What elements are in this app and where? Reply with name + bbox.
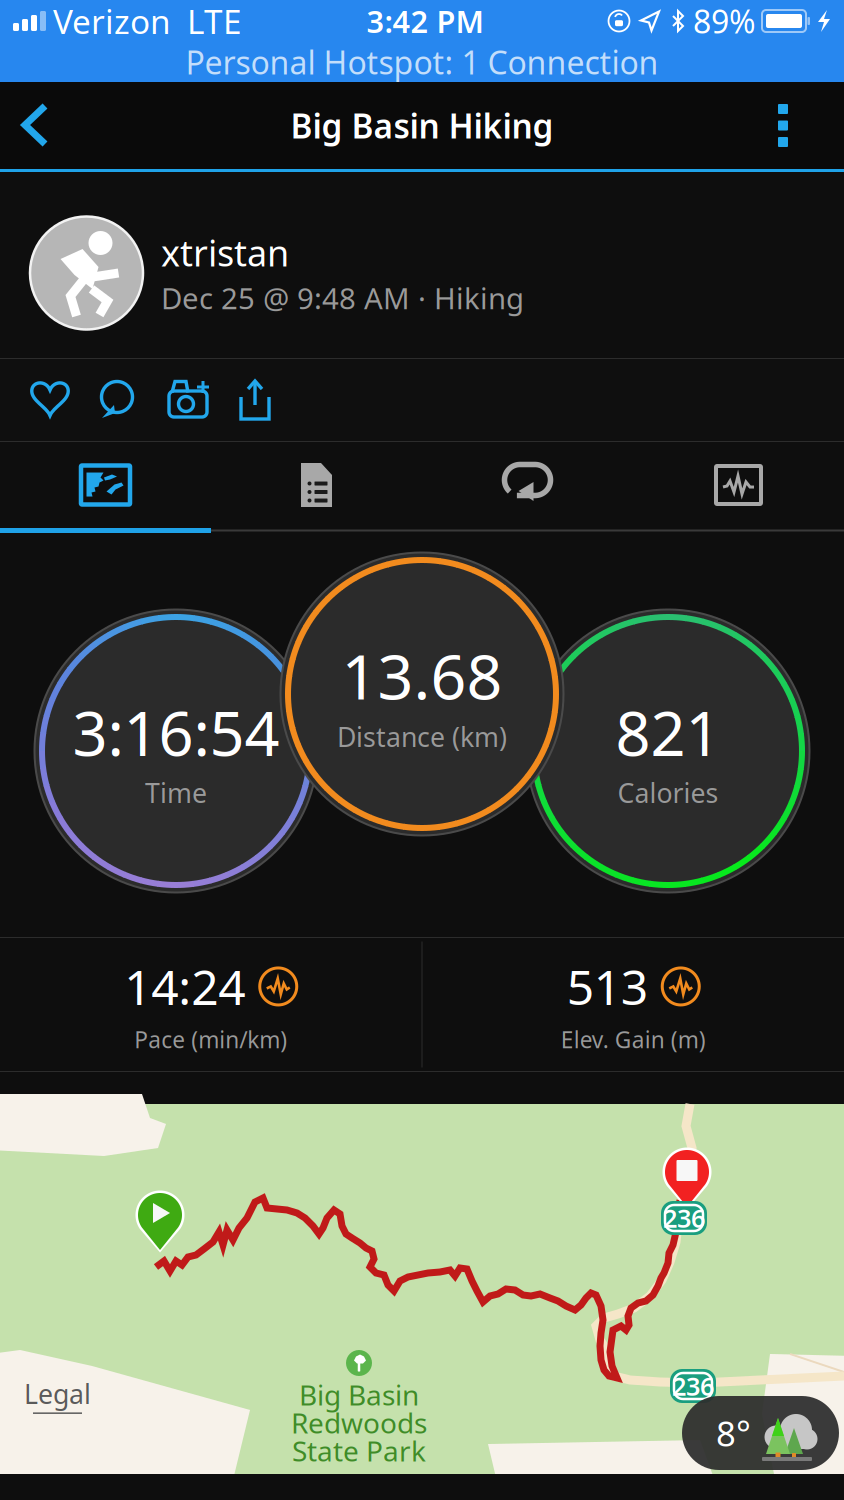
button[interactable]: Map [0, 442, 211, 528]
staticText: Dec 25 @ 9:48 AM · Hiking [161, 278, 524, 317]
button[interactable]: Comment [89, 371, 145, 427]
staticText: Verizon [53, 0, 171, 43]
staticText: Big Basin [299, 1376, 419, 1413]
staticText: Calories [617, 775, 718, 810]
button[interactable]: Kudos [22, 371, 78, 427]
staticText: 3:42 PM [366, 1, 483, 41]
button[interactable]: Legal [16, 1368, 99, 1422]
staticText: Legal [24, 1376, 91, 1411]
staticText: 8° [716, 1410, 751, 1456]
button[interactable]: Analysis [633, 442, 844, 528]
staticText: Redwoods [291, 1404, 427, 1441]
button[interactable]: Athlete avatar [30, 216, 143, 329]
button[interactable]: Share [227, 371, 283, 427]
staticText: 14:24 [124, 955, 245, 1018]
button[interactable]: Add photo [160, 371, 216, 427]
staticText: Pace (min/km) [134, 1024, 287, 1054]
button[interactable]: More options [750, 83, 844, 168]
staticText: 89% [693, 0, 756, 42]
staticText: Elev. Gain (m) [561, 1024, 706, 1054]
staticText: Personal Hotspot: 1 Connection [185, 41, 658, 83]
staticText: Distance (km) [337, 719, 507, 754]
button[interactable]: Back [0, 82, 74, 169]
staticText: 236 [663, 1201, 705, 1235]
staticText: State Park [292, 1432, 426, 1469]
button[interactable]: Splits [211, 442, 422, 528]
staticText: xtristan [161, 229, 289, 276]
staticText: Time [145, 775, 207, 810]
staticText: 236 [672, 1369, 714, 1403]
staticText: Big Basin Hiking [290, 103, 553, 148]
button[interactable]: Weather, 8 degrees [682, 1396, 839, 1470]
staticText: 513 [567, 955, 648, 1018]
staticText: 13.68 [341, 634, 502, 717]
staticText: LTE [187, 0, 242, 43]
staticText: 821 [615, 692, 720, 773]
button[interactable]: Segments [422, 442, 633, 528]
staticText: 3:16:54 [72, 692, 279, 773]
